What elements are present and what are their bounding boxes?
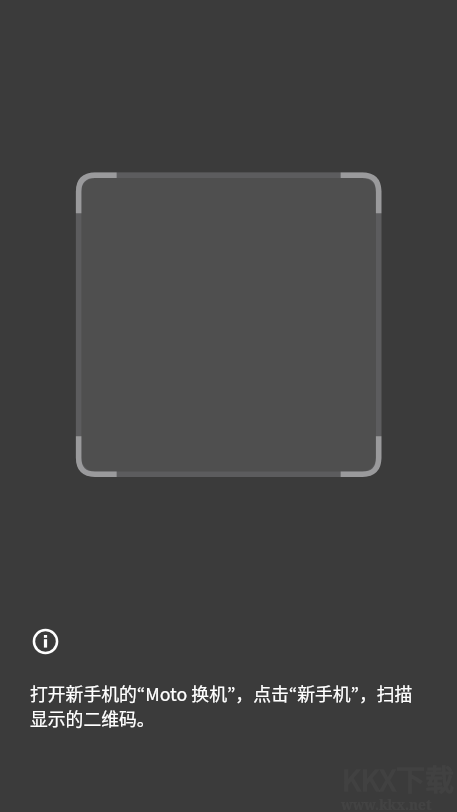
button[interactable]: Info xyxy=(32,628,59,655)
staticText: www.kkx.net xyxy=(341,795,432,812)
staticText: 打开新手机的“Moto 换机”，点击“新手机”，扫描 显示的二维码。 xyxy=(30,680,457,731)
